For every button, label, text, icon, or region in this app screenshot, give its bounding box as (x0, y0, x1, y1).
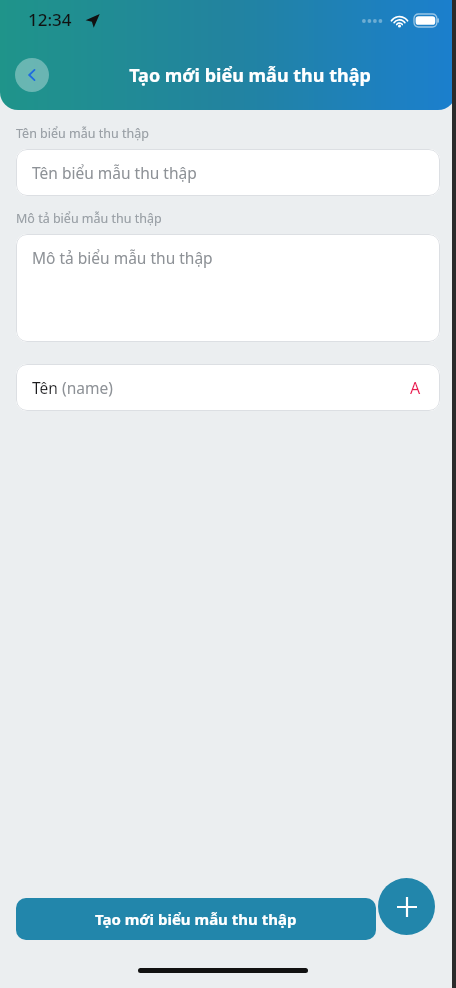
button[interactable]: Back (15, 58, 49, 92)
staticText: Tên biểu mẫu thu thập (32, 162, 197, 183)
button[interactable]: Tên (16, 364, 440, 411)
staticText: 12:34 (28, 8, 72, 31)
button[interactable]: Mô tả biểu mẫu thu thập (16, 234, 440, 342)
staticText: Tạo mới biểu mẫu thu thập (95, 909, 297, 929)
staticText: Tạo mới biểu mẫu thu thập (60, 63, 440, 88)
staticText: Mô tả biểu mẫu thu thập (16, 210, 162, 227)
staticText: Tên (32, 377, 62, 398)
staticText: (name) (62, 377, 113, 398)
button[interactable]: Add (378, 878, 435, 935)
staticText: Mô tả biểu mẫu thu thập (32, 247, 213, 268)
button[interactable]: Tên biểu mẫu thu thập (16, 149, 440, 196)
button[interactable]: Tạo mới biểu mẫu thu thập (16, 898, 376, 940)
staticText: Tên biểu mẫu thu thập (16, 125, 149, 142)
staticText: A (410, 377, 421, 399)
